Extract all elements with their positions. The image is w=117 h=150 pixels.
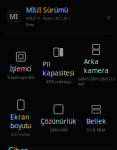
- staticText: 2400×1080: [49, 127, 67, 132]
- staticText: Ekran boyutu: [10, 112, 31, 130]
- staticText: Beta: [26, 22, 34, 27]
- staticText: Pil kapasitesi: [42, 60, 74, 77]
- staticText: Arka kamera: [84, 57, 109, 75]
- staticText: Snapdragon 865: [7, 74, 34, 80]
- button[interactable]: Arka kamera: [77, 41, 115, 90]
- staticText: İşlemci: [10, 64, 32, 73]
- button[interactable]: İşlemci: [2, 48, 40, 83]
- staticText: MI: [9, 12, 17, 21]
- button[interactable]: MI: [0, 2, 117, 31]
- staticText: Cihaz modeli: [8, 146, 34, 150]
- button[interactable]: Cihaz modeli: [0, 148, 117, 150]
- button[interactable]: Ekran boyutu: [2, 96, 40, 140]
- staticText: 4700 mAh(typ): [46, 79, 71, 84]
- staticText: 6.67 inches: [11, 132, 30, 137]
- button[interactable]: Çözünürlük: [40, 100, 77, 135]
- staticText: MIUI Sürümü: [26, 6, 68, 14]
- staticText: 8 GB RAM: [87, 127, 106, 132]
- button[interactable]: Pil kapasitesi: [40, 43, 77, 87]
- staticText: 64MP+5MP+2MP+13MP: [78, 76, 114, 87]
- staticText: MIUI 11 - Redmi 20.1.20 |: [26, 15, 70, 21]
- button[interactable]: Bellek: [77, 100, 115, 135]
- staticText: Bellek: [86, 117, 106, 126]
- staticText: Çözünürlük: [40, 117, 76, 126]
- staticText: ›: [107, 10, 110, 22]
